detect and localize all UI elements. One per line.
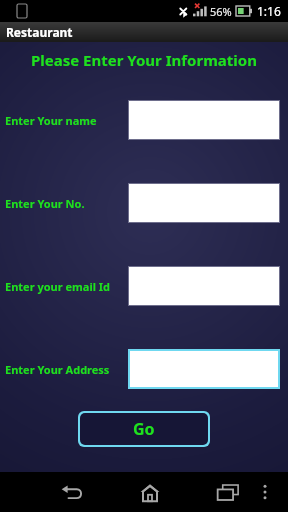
- button[interactable]: More options: [248, 475, 282, 509]
- button[interactable]: Go: [80, 413, 208, 445]
- staticText: Please Enter Your Information: [31, 50, 257, 70]
- staticText: Enter Your Address: [5, 362, 110, 377]
- button[interactable]: Back: [52, 472, 92, 512]
- button[interactable]: Home: [130, 472, 170, 512]
- staticText: Enter Your name: [5, 113, 97, 128]
- staticText: 56%: [210, 4, 232, 19]
- staticText: Enter your email Id: [5, 279, 111, 294]
- staticText: Go: [133, 418, 155, 440]
- button[interactable]: Recent apps: [208, 472, 248, 512]
- staticText: 1:16: [257, 3, 281, 19]
- staticText: Restaurant: [6, 24, 73, 40]
- staticText: Enter Your No.: [5, 196, 85, 211]
